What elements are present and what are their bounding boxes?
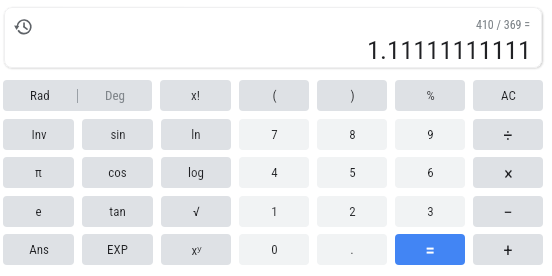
staticText: − [503,201,513,223]
button[interactable]: % [395,80,465,111]
button[interactable]: AC [473,80,543,111]
staticText: 3 [427,204,434,219]
staticText: 7 [271,127,278,142]
staticText: Deg [105,88,125,103]
button[interactable]: x! [160,80,231,111]
staticText: ln [191,127,201,142]
staticText: AC [501,88,516,103]
button[interactable]: 6 [395,157,465,188]
button[interactable]: . [317,234,387,265]
button[interactable]: ln [161,119,231,150]
staticText: . [350,242,354,257]
button[interactable]: cos [82,157,153,188]
button[interactable]: EXP [82,234,153,265]
staticText: 5 [349,165,356,180]
staticText: 6 [427,165,434,180]
button[interactable]: ( [239,80,309,111]
button[interactable]: 7 [239,119,309,150]
button[interactable]: 9 [395,119,465,150]
staticText: 1.11111111111 [367,34,531,65]
staticText: Inv [31,127,47,142]
staticText: 9 [427,127,434,142]
staticText: Ans [29,242,49,257]
staticText: √ [193,204,200,219]
staticText: 2 [349,204,356,219]
staticText: = [425,239,435,261]
staticText: 1 [271,204,278,219]
staticText: e [35,204,42,219]
button[interactable]: Rad [3,80,77,111]
staticText: 0 [271,242,278,257]
button[interactable]: √ [161,196,231,227]
button[interactable]: 2 [317,196,387,227]
button[interactable]: + [473,234,543,265]
button[interactable]: 3 [395,196,465,227]
button[interactable]: = [395,234,465,265]
button[interactable]: e [3,196,74,227]
staticText: ÷ [503,124,513,146]
staticText: Rad [30,88,50,103]
button[interactable]: tan [82,196,153,227]
staticText: 8 [349,127,356,142]
button[interactable]: 8 [317,119,387,150]
staticText: xʸ [191,241,202,259]
button[interactable]: Inv [3,119,74,150]
button[interactable]: − [473,196,543,227]
button[interactable]: xʸ [161,234,231,265]
staticText: + [503,239,513,261]
button[interactable]: log [161,157,231,188]
staticText: 410 / 369 = [476,18,531,32]
staticText: sin [110,127,126,142]
button[interactable]: ÷ [473,119,543,150]
button[interactable]: 1 [239,196,309,227]
button[interactable]: 4 [239,157,309,188]
staticText: cos [108,165,127,180]
staticText: EXP [107,242,128,257]
button[interactable]: ) [317,80,387,111]
staticText: tan [109,204,126,219]
staticText: ) [350,88,355,103]
button[interactable]: 0 [239,234,309,265]
button[interactable]: π [3,157,74,188]
button[interactable]: 5 [317,157,387,188]
staticText: π [35,165,42,180]
button[interactable]: History [11,15,33,37]
button[interactable]: sin [82,119,153,150]
button[interactable]: × [473,157,543,188]
button[interactable]: Ans [3,234,74,265]
staticText: x! [191,88,200,103]
button[interactable]: Deg [78,80,152,111]
staticText: % [426,88,435,103]
staticText: 4 [271,165,278,180]
staticText: log [188,165,204,180]
staticText: ( [272,88,277,103]
staticText: × [504,162,513,184]
